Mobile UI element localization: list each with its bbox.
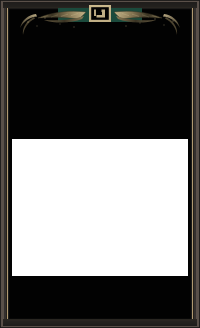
button[interactable]: Emblem xyxy=(87,0,113,22)
